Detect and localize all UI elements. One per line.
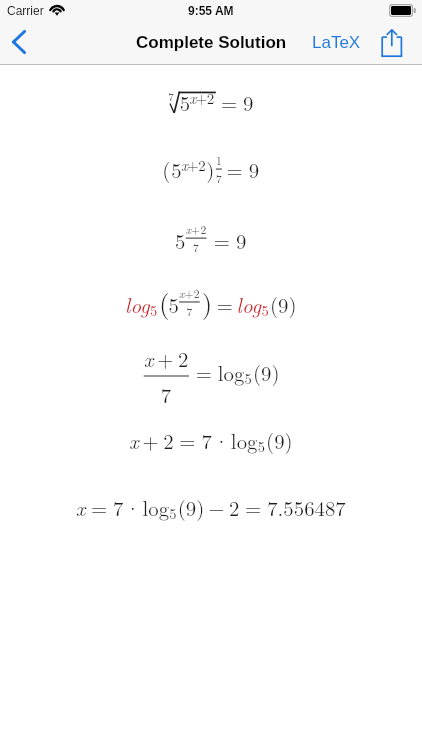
- staticText: 9:55 AM: [188, 4, 234, 17]
- staticText: Complete Solution: [136, 33, 287, 52]
- button[interactable]: Share: [384, 20, 422, 64]
- staticText: Carrier: [7, 4, 44, 17]
- button[interactable]: Back: [0, 20, 46, 64]
- button[interactable]: LaTeX: [312, 33, 361, 52]
- staticText: LaTeX: [312, 33, 361, 52]
